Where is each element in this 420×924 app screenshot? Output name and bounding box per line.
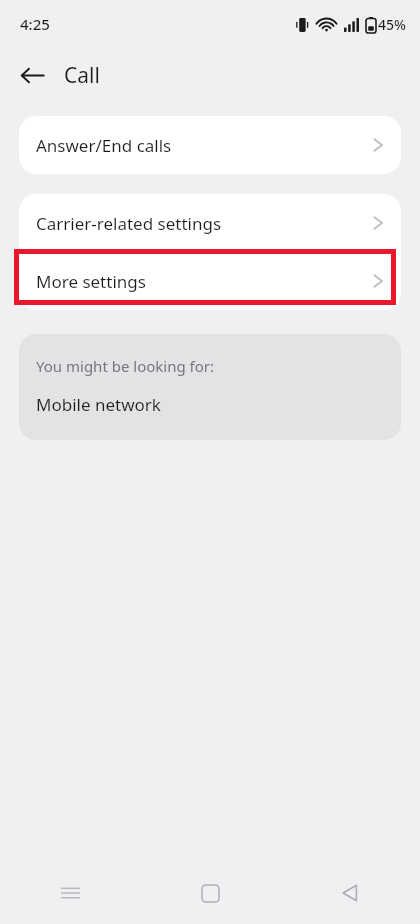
staticText: You might be looking for:: [36, 356, 215, 376]
button[interactable]: Recent apps: [42, 865, 98, 921]
staticText: 4:25: [20, 14, 50, 34]
button[interactable]: Back: [8, 51, 56, 99]
staticText: Carrier-related settings: [36, 212, 373, 235]
button[interactable]: Home: [182, 865, 238, 921]
button[interactable]: You might be looking for:: [19, 334, 401, 440]
button[interactable]: Back: [322, 865, 378, 921]
button[interactable]: More settings: [19, 252, 401, 310]
button[interactable]: Carrier-related settings: [19, 194, 401, 252]
button[interactable]: Answer/End calls: [19, 116, 401, 174]
staticText: 45%: [378, 15, 406, 34]
staticText: Call: [64, 61, 100, 90]
staticText: Mobile network: [36, 393, 161, 416]
staticText: More settings: [36, 270, 373, 293]
staticText: Answer/End calls: [36, 134, 373, 157]
